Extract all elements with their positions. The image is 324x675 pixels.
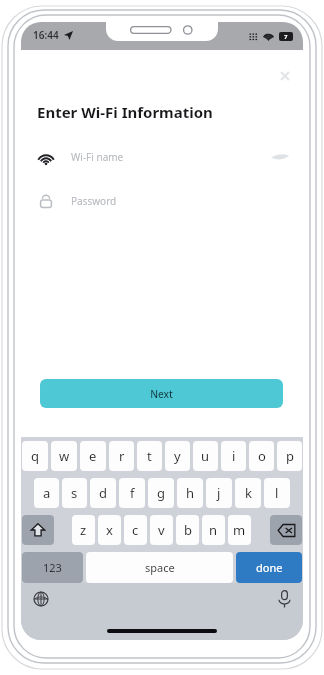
button[interactable]: Shift [22, 515, 54, 545]
button[interactable]: t [137, 441, 162, 471]
staticText: Next [150, 387, 173, 401]
staticText: q [31, 447, 39, 465]
staticText: v [158, 521, 165, 539]
button[interactable]: h [177, 478, 203, 508]
button[interactable]: Dictation [278, 590, 291, 608]
button[interactable]: 123 [22, 552, 83, 583]
button[interactable]: Wi-Fi name [21, 142, 303, 172]
button[interactable]: Password [21, 186, 303, 216]
staticText: o [258, 447, 266, 465]
button[interactable]: r [109, 441, 134, 471]
staticText: s [71, 484, 78, 502]
staticText: Password [71, 194, 117, 208]
button[interactable]: o [249, 441, 274, 471]
button[interactable]: s [62, 478, 87, 508]
staticText: b [184, 521, 192, 539]
button[interactable]: u [193, 441, 218, 471]
staticText: 16:44 [33, 28, 59, 42]
button[interactable]: e [80, 441, 106, 471]
staticText: u [201, 447, 210, 465]
button[interactable]: space [86, 552, 233, 583]
staticText: c [132, 521, 139, 539]
staticText: w [59, 447, 70, 465]
staticText: d [99, 484, 107, 502]
staticText: t [147, 447, 152, 465]
button[interactable]: k [235, 478, 261, 508]
button[interactable]: a [34, 478, 59, 508]
button[interactable]: Next [40, 379, 283, 408]
staticText: i [232, 447, 236, 465]
staticText: done [256, 560, 283, 575]
staticText: f [130, 484, 135, 502]
button[interactable]: i [221, 441, 246, 471]
button[interactable]: d [90, 478, 116, 508]
staticText: h [186, 484, 195, 502]
button[interactable]: Change keyboard language [33, 591, 49, 607]
button[interactable]: l [264, 478, 290, 508]
button[interactable]: m [228, 515, 251, 545]
button[interactable]: b [176, 515, 199, 545]
staticText: space [145, 560, 175, 575]
button[interactable]: done [236, 552, 302, 583]
button[interactable]: Close [279, 70, 291, 82]
staticText: z [80, 521, 87, 539]
button[interactable]: f [119, 478, 145, 508]
staticText: x [106, 521, 113, 539]
button[interactable]: z [72, 515, 95, 545]
button[interactable]: v [150, 515, 173, 545]
staticText: j [217, 484, 221, 502]
other: Scan networks [271, 151, 289, 163]
staticText: Enter Wi-Fi Information [37, 102, 213, 122]
staticText: n [209, 521, 218, 539]
staticText: e [89, 447, 97, 465]
button[interactable]: n [202, 515, 225, 545]
staticText: g [157, 484, 165, 502]
staticText: p [286, 447, 294, 465]
button[interactable]: x [98, 515, 121, 545]
button[interactable]: c [124, 515, 147, 545]
button[interactable]: g [148, 478, 174, 508]
staticText: k [245, 484, 252, 502]
staticText: 123 [43, 560, 62, 575]
staticText: y [174, 447, 181, 465]
button[interactable]: w [51, 441, 77, 471]
button[interactable]: p [277, 441, 302, 471]
staticText: l [275, 484, 279, 502]
button[interactable]: Backspace [270, 515, 302, 545]
staticText: 7 [284, 33, 288, 41]
button[interactable]: j [206, 478, 232, 508]
staticText: r [119, 447, 125, 465]
button[interactable]: q [22, 441, 48, 471]
staticText: m [233, 521, 246, 539]
staticText: Wi-Fi name [71, 150, 124, 164]
button[interactable]: y [165, 441, 190, 471]
staticText: a [43, 484, 51, 502]
